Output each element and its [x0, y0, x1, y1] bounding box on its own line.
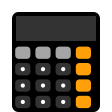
button[interactable]: Percent — [56, 47, 71, 59]
button[interactable]: Digit — [35, 63, 51, 75]
button[interactable]: Digit — [56, 96, 71, 108]
button[interactable]: Digit — [15, 79, 30, 92]
button[interactable]: Digit — [35, 79, 51, 92]
button[interactable]: Digit — [15, 96, 30, 108]
button[interactable]: Digit — [15, 63, 30, 75]
button[interactable]: Digit — [56, 79, 71, 92]
button[interactable]: Operator — [76, 79, 91, 92]
button[interactable]: Digit — [56, 63, 71, 75]
button[interactable]: Operator — [76, 63, 91, 75]
button[interactable]: Divide — [76, 47, 91, 59]
button[interactable]: Operator — [76, 96, 91, 108]
button[interactable]: Plus minus — [35, 47, 51, 59]
button[interactable]: Digit — [35, 96, 51, 108]
button[interactable]: Clear — [15, 47, 30, 59]
